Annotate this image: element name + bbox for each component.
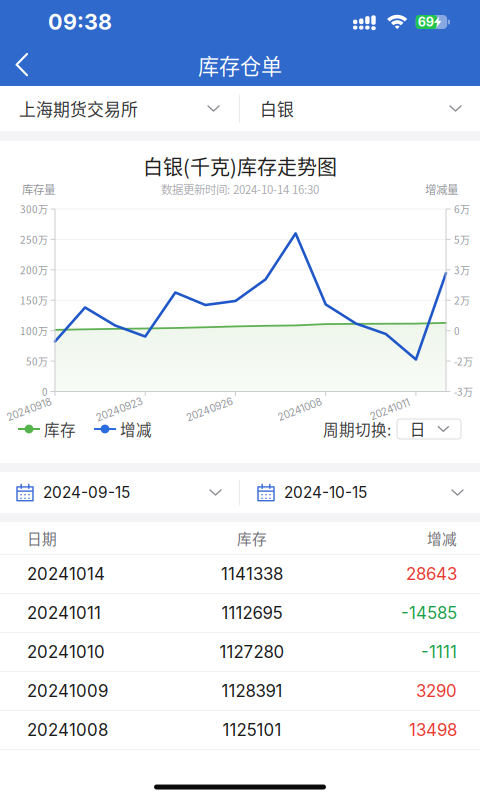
staticText: 20240923 bbox=[95, 403, 144, 416]
staticText: 数据更新时间: 2024-10-14 16:30 bbox=[161, 181, 319, 197]
staticText: 28643 bbox=[406, 564, 457, 584]
staticText: 0 bbox=[454, 323, 460, 338]
staticText: 上海期货交易所 bbox=[19, 96, 138, 121]
staticText: 5万 bbox=[454, 232, 470, 247]
staticText: 250万 bbox=[20, 232, 48, 247]
staticText: 1125101 bbox=[222, 720, 281, 740]
staticText: -1111 bbox=[421, 642, 457, 662]
staticText: 20240918 bbox=[5, 403, 52, 416]
staticText: 2万 bbox=[454, 293, 470, 307]
staticText: 1112695 bbox=[221, 603, 282, 623]
staticText: 69 bbox=[418, 14, 434, 30]
staticText: 库存量 bbox=[22, 181, 55, 197]
staticText: 白银(千克)库存走势图 bbox=[143, 151, 337, 180]
staticText: 20241011 bbox=[369, 403, 411, 416]
staticText: 库存 bbox=[237, 527, 267, 549]
button[interactable]: 2024-09-15 bbox=[0, 472, 239, 513]
staticText: 300万 bbox=[20, 202, 48, 216]
staticText: 1128391 bbox=[221, 681, 282, 701]
staticText: 0 bbox=[42, 384, 48, 399]
staticText: 6万 bbox=[454, 202, 470, 216]
staticText: 2024-10-15 bbox=[284, 483, 367, 502]
staticText: 1141338 bbox=[221, 564, 283, 584]
staticText: 20241008 bbox=[27, 720, 108, 740]
staticText: 增减量 bbox=[425, 181, 458, 197]
staticText: 2024-09-15 bbox=[43, 483, 130, 502]
staticText: 150万 bbox=[20, 293, 48, 307]
button[interactable]: Back bbox=[0, 44, 44, 86]
button[interactable]: 白银 bbox=[240, 86, 480, 131]
staticText: 3万 bbox=[454, 263, 470, 277]
button[interactable]: 2024-10-15 bbox=[240, 472, 480, 513]
staticText: 50万 bbox=[26, 354, 48, 368]
staticText: 日期 bbox=[27, 527, 57, 549]
staticText: 20241014 bbox=[27, 564, 105, 584]
staticText: 20240926 bbox=[185, 403, 234, 416]
staticText: 日 bbox=[410, 418, 426, 440]
staticText: 13498 bbox=[409, 720, 457, 740]
staticText: -2万 bbox=[454, 354, 473, 368]
staticText: 白银 bbox=[260, 96, 294, 121]
staticText: 周期切换: bbox=[323, 418, 391, 440]
staticText: 3290 bbox=[416, 681, 457, 701]
staticText: 20241010 bbox=[27, 642, 105, 662]
staticText: 1127280 bbox=[219, 642, 284, 662]
staticText: 20241011 bbox=[27, 603, 101, 623]
staticText: 库存 bbox=[44, 418, 76, 440]
staticText: -3万 bbox=[454, 384, 473, 399]
staticText: 库存仓单 bbox=[198, 50, 282, 80]
staticText: 20241009 bbox=[27, 681, 108, 701]
button[interactable]: 上海期货交易所 bbox=[0, 86, 239, 131]
staticText: 增减 bbox=[120, 418, 152, 440]
staticText: 20241008 bbox=[277, 403, 323, 416]
button[interactable]: 日 bbox=[397, 419, 461, 439]
staticText: 09:38 bbox=[48, 9, 112, 35]
staticText: 增减 bbox=[427, 527, 457, 549]
staticText: 100万 bbox=[20, 323, 48, 338]
staticText: -14585 bbox=[401, 603, 457, 623]
staticText: 200万 bbox=[20, 263, 48, 277]
